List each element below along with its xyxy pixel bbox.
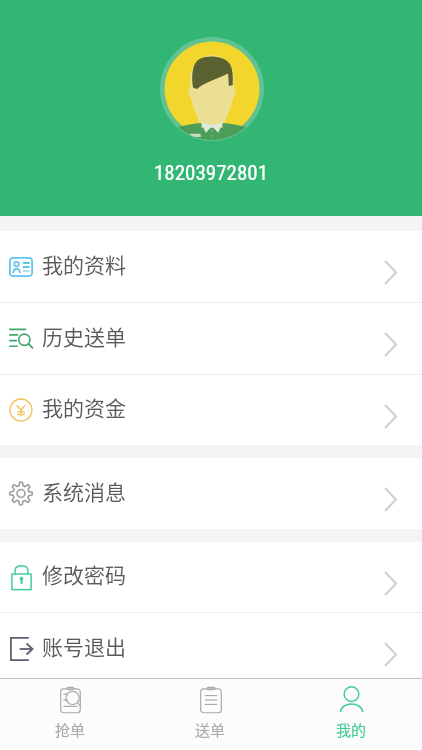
staticText: 18203972801 bbox=[154, 161, 269, 186]
button[interactable]: 我的资金 bbox=[0, 375, 422, 445]
staticText: 我的资金 bbox=[42, 392, 126, 422]
staticText: 修改密码 bbox=[42, 559, 126, 589]
staticText: 我的资料 bbox=[42, 249, 126, 279]
staticText: 我的 bbox=[336, 719, 367, 741]
staticText: 系统消息 bbox=[42, 476, 126, 506]
button[interactable]: 账号退出 bbox=[0, 613, 422, 684]
staticText: 抢单 bbox=[55, 719, 86, 741]
button[interactable]: 我的资料 bbox=[0, 231, 422, 302]
button[interactable]: 历史送单 bbox=[0, 303, 422, 374]
button[interactable]: 系统消息 bbox=[0, 458, 422, 529]
button[interactable]: 修改密码 bbox=[0, 542, 422, 612]
button[interactable]: 送单 bbox=[140, 679, 281, 750]
button[interactable]: 我的 bbox=[281, 679, 422, 750]
staticText: 账号退出 bbox=[42, 631, 126, 661]
staticText: 送单 bbox=[195, 719, 226, 741]
staticText: 历史送单 bbox=[42, 321, 126, 351]
button[interactable]: 抢单 bbox=[0, 679, 140, 750]
